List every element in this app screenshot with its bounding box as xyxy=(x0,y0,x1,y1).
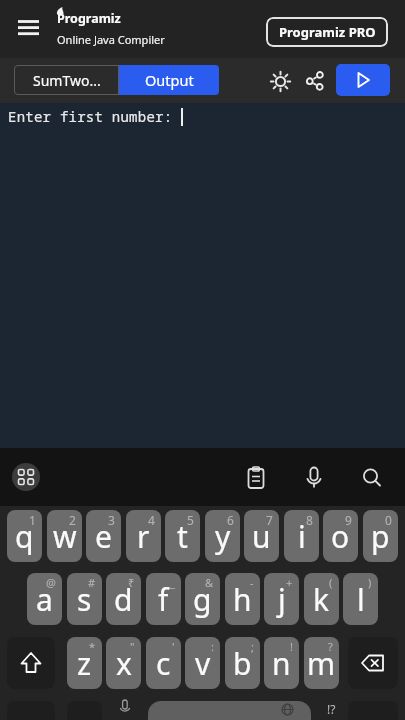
staticText: u xyxy=(252,516,271,557)
staticText: g xyxy=(193,579,212,620)
staticText: x xyxy=(116,643,132,684)
button[interactable] xyxy=(336,64,390,96)
button[interactable]: Output xyxy=(119,65,219,95)
button[interactable]: e xyxy=(86,510,121,562)
staticText: : xyxy=(211,639,214,654)
button[interactable]: q xyxy=(7,510,42,562)
staticText: !? xyxy=(327,701,336,717)
staticText: t xyxy=(177,516,188,557)
button[interactable] xyxy=(12,463,40,491)
staticText: z xyxy=(77,643,92,684)
button[interactable]: h xyxy=(225,573,260,625)
staticText: 0 xyxy=(385,512,392,528)
staticText: s xyxy=(77,579,92,620)
button[interactable]: i xyxy=(284,510,319,562)
button[interactable] xyxy=(298,462,330,494)
staticText: y xyxy=(215,516,231,557)
staticText: ( xyxy=(329,575,333,590)
staticText: & xyxy=(205,575,214,590)
button[interactable]: g xyxy=(185,573,220,625)
button[interactable]: t xyxy=(165,510,200,562)
staticText: 6 xyxy=(227,512,234,528)
staticText: " xyxy=(130,639,135,654)
button[interactable]: l xyxy=(343,573,378,625)
staticText: l xyxy=(357,579,365,620)
button[interactable]: p xyxy=(363,510,398,562)
staticText: SumTwo... xyxy=(33,71,101,90)
staticText: _ xyxy=(170,575,175,590)
staticText: ! xyxy=(290,639,293,654)
button[interactable]: v xyxy=(185,637,220,689)
button[interactable]: z xyxy=(67,637,102,689)
button[interactable] xyxy=(298,64,331,97)
button[interactable]: n xyxy=(264,637,299,689)
button[interactable]: a xyxy=(27,573,62,625)
staticText: ' xyxy=(172,639,175,654)
button[interactable]: j xyxy=(264,573,299,625)
button[interactable]: c xyxy=(146,637,181,689)
staticText: j xyxy=(278,579,286,620)
staticText: Output xyxy=(145,70,194,90)
staticText: # xyxy=(88,575,96,590)
staticText: o xyxy=(331,516,350,557)
staticText: v xyxy=(195,643,211,684)
button[interactable] xyxy=(356,462,388,494)
staticText: 1 xyxy=(29,512,36,528)
staticText: k xyxy=(313,579,330,620)
staticText: w xyxy=(53,516,77,557)
staticText: Online Java Compiler xyxy=(57,32,165,47)
staticText: 9 xyxy=(345,512,352,528)
button[interactable]: d xyxy=(106,573,141,625)
button[interactable] xyxy=(148,701,311,720)
staticText: e xyxy=(95,516,112,557)
staticText: * xyxy=(89,639,96,654)
button[interactable]: m xyxy=(304,637,339,689)
button[interactable]: s xyxy=(67,573,102,625)
staticText: ₹ xyxy=(128,575,135,590)
button[interactable]: o xyxy=(323,510,358,562)
staticText: m xyxy=(307,643,336,684)
button[interactable]: y xyxy=(205,510,240,562)
staticText: h xyxy=(233,579,252,620)
staticText: c xyxy=(156,643,171,684)
button[interactable]: k xyxy=(304,573,339,625)
button[interactable]: r xyxy=(126,510,161,562)
staticText: 3 xyxy=(108,512,115,528)
button[interactable]: x xyxy=(106,637,141,689)
staticText: q xyxy=(15,516,34,557)
staticText: ? xyxy=(328,639,333,654)
staticText: r xyxy=(137,516,150,557)
staticText: f xyxy=(158,579,169,620)
staticText: n xyxy=(272,643,291,684)
button[interactable]: Programiz PRO xyxy=(266,17,388,47)
staticText: 7 xyxy=(266,512,273,528)
staticText: 5 xyxy=(187,512,194,528)
staticText: Programiz PRO xyxy=(279,23,376,41)
staticText: @ xyxy=(46,575,56,590)
staticText: Programiz xyxy=(57,10,121,27)
staticText: b xyxy=(233,643,252,684)
staticText: 4 xyxy=(148,512,155,528)
button[interactable] xyxy=(10,10,48,46)
button[interactable] xyxy=(240,462,272,494)
button[interactable] xyxy=(348,637,398,689)
staticText: ) xyxy=(368,575,372,590)
button[interactable] xyxy=(7,637,55,689)
staticText: + xyxy=(286,575,293,590)
button[interactable]: u xyxy=(244,510,279,562)
staticText: 2 xyxy=(69,512,76,528)
staticText: a xyxy=(36,579,53,620)
button[interactable]: f xyxy=(146,573,181,625)
staticText: i xyxy=(298,516,306,557)
staticText: - xyxy=(250,575,254,590)
button[interactable]: SumTwo... xyxy=(14,65,119,95)
button[interactable]: w xyxy=(47,510,82,562)
button[interactable]: b xyxy=(225,637,260,689)
staticText: 8 xyxy=(306,512,313,528)
button[interactable] xyxy=(264,64,297,97)
staticText: ; xyxy=(251,639,254,654)
staticText: p xyxy=(371,516,390,557)
